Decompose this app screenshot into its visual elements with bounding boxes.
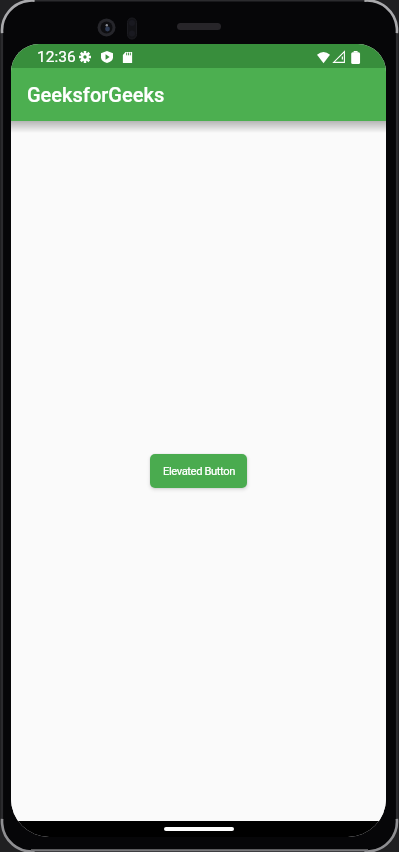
staticText: 12:36 — [37, 48, 76, 66]
staticText: Elevated Button — [163, 465, 235, 478]
staticText: GeeksforGeeks — [27, 83, 165, 106]
